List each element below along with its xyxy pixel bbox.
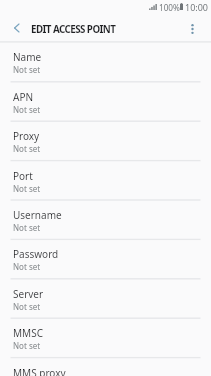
button[interactable]: Name bbox=[0, 42, 211, 81]
staticText: Not set bbox=[13, 222, 41, 233]
staticText: Not set bbox=[13, 261, 41, 272]
staticText: Port bbox=[13, 169, 33, 183]
staticText: APN bbox=[13, 90, 34, 104]
staticText: MMS proxy bbox=[13, 366, 66, 376]
button[interactable]: APN bbox=[0, 82, 211, 121]
staticText: Name bbox=[13, 50, 42, 64]
staticText: Not set bbox=[13, 301, 41, 312]
staticText: Username bbox=[13, 208, 62, 222]
staticText: 10:00 bbox=[185, 1, 209, 13]
button[interactable]: Server bbox=[0, 279, 211, 318]
staticText: MMSC bbox=[13, 326, 43, 340]
staticText: Not set bbox=[13, 143, 41, 154]
button[interactable]: Port bbox=[0, 161, 211, 200]
button[interactable]: MMSC bbox=[0, 318, 211, 357]
staticText: 100% bbox=[159, 2, 180, 13]
staticText: Proxy bbox=[13, 129, 40, 143]
button[interactable]: Password bbox=[0, 239, 211, 278]
button[interactable]: Proxy bbox=[0, 121, 211, 160]
staticText: EDIT ACCESS POINT bbox=[31, 23, 116, 36]
button[interactable]: More options bbox=[183, 20, 201, 38]
button[interactable]: MMS proxy bbox=[0, 358, 211, 376]
staticText: Not set bbox=[13, 340, 41, 351]
staticText: Not set bbox=[13, 104, 41, 115]
staticText: Password bbox=[13, 247, 59, 261]
button[interactable]: Username bbox=[0, 200, 211, 239]
staticText: Server bbox=[13, 287, 44, 301]
button[interactable]: Navigate up bbox=[6, 18, 26, 38]
staticText: Not set bbox=[13, 183, 41, 194]
staticText: Not set bbox=[13, 64, 41, 75]
